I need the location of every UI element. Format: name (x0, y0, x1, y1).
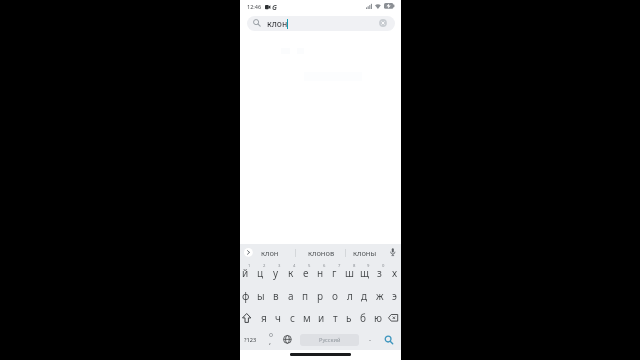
button[interactable]: ж (372, 286, 387, 306)
button[interactable]: клоны (348, 246, 382, 259)
button[interactable]: ф (238, 286, 253, 306)
staticText: й (242, 266, 249, 280)
staticText: р (317, 289, 324, 303)
button[interactable]: ы (253, 286, 268, 306)
staticText: п (302, 289, 309, 303)
button[interactable]: щ (357, 263, 372, 283)
staticText: ь (346, 311, 352, 325)
button[interactable]: ?123 (241, 333, 259, 347)
staticText: , (269, 336, 272, 346)
button[interactable]: у (268, 263, 283, 283)
button[interactable]: ч (271, 308, 285, 328)
button[interactable]: л (342, 286, 357, 306)
button[interactable]: п (298, 286, 313, 306)
button[interactable] (283, 335, 292, 344)
staticText: д (361, 289, 368, 303)
staticText: 0 (382, 263, 385, 269)
button[interactable] (384, 335, 394, 345)
staticText: 7 (338, 263, 341, 269)
staticText: ц (257, 266, 264, 280)
button[interactable]: т (328, 308, 342, 328)
staticText: ?123 (244, 336, 257, 344)
staticText: и (318, 311, 325, 325)
button[interactable]: и (314, 308, 328, 328)
button[interactable]: о (327, 286, 342, 306)
staticText: н (317, 266, 324, 280)
staticText: 8 (353, 263, 356, 269)
staticText: е (303, 266, 309, 280)
button[interactable]: э (387, 286, 402, 306)
button[interactable]: й (238, 263, 253, 283)
button[interactable]: к (283, 263, 298, 283)
button[interactable] (244, 248, 253, 257)
button[interactable]: в (268, 286, 283, 306)
staticText: о (332, 289, 338, 303)
staticText: г (332, 266, 337, 280)
staticText: 1 (248, 263, 251, 269)
button[interactable]: ц (253, 263, 268, 283)
button[interactable]: е (298, 263, 313, 283)
button[interactable]: г (327, 263, 342, 283)
staticText: т (333, 311, 338, 325)
staticText: Русский (319, 336, 341, 344)
button[interactable] (247, 16, 395, 31)
staticText: 6 (323, 263, 326, 269)
staticText: в (273, 289, 279, 303)
staticText: ф (242, 289, 250, 303)
staticText: у (273, 266, 279, 280)
button[interactable]: м (300, 308, 314, 328)
button[interactable]: с (285, 308, 299, 328)
button[interactable]: . (365, 332, 375, 344)
staticText: ю (374, 311, 382, 325)
button[interactable]: р (313, 286, 328, 306)
staticText: с (290, 311, 295, 325)
button[interactable]: д (357, 286, 372, 306)
staticText: б (360, 311, 366, 325)
staticText: з (377, 266, 382, 280)
staticText: клон (261, 248, 279, 258)
staticText: 12:46 (247, 3, 262, 10)
button[interactable]: клон (255, 246, 285, 259)
staticText: ч (275, 311, 281, 325)
staticText: G (272, 2, 277, 12)
staticText: х (392, 266, 398, 280)
button[interactable]: Русский (300, 334, 359, 346)
button[interactable] (242, 313, 251, 323)
staticText: м (303, 311, 311, 325)
staticText: к (288, 266, 294, 280)
staticText: клоны (353, 248, 377, 258)
staticText: 5 (308, 263, 311, 269)
staticText: ж (376, 289, 384, 303)
button[interactable]: ь (342, 308, 356, 328)
button[interactable]: х (387, 263, 402, 283)
button[interactable]: б (356, 308, 370, 328)
staticText: э (392, 289, 397, 303)
button[interactable]: а (283, 286, 298, 306)
staticText: 9 (367, 263, 370, 269)
button[interactable]: з (372, 263, 387, 283)
button[interactable] (390, 248, 396, 257)
staticText: 2 (263, 263, 266, 269)
staticText: ш (345, 266, 354, 280)
staticText: клон (267, 18, 288, 30)
staticText: ы (257, 289, 265, 303)
staticText: а (288, 289, 294, 303)
button[interactable]: я (257, 308, 271, 328)
button[interactable]: ш (342, 263, 357, 283)
button[interactable] (388, 314, 399, 322)
button[interactable]: , (265, 335, 275, 347)
button[interactable] (379, 19, 387, 27)
button[interactable]: клонов (301, 246, 341, 259)
staticText: я (261, 311, 267, 325)
button[interactable]: ю (371, 308, 385, 328)
staticText: 3 (278, 263, 281, 269)
button[interactable]: н (313, 263, 328, 283)
staticText: л (347, 289, 353, 303)
staticText: . (369, 333, 372, 343)
staticText: 4 (293, 263, 296, 269)
staticText: щ (360, 266, 369, 280)
staticText: клонов (308, 248, 335, 258)
